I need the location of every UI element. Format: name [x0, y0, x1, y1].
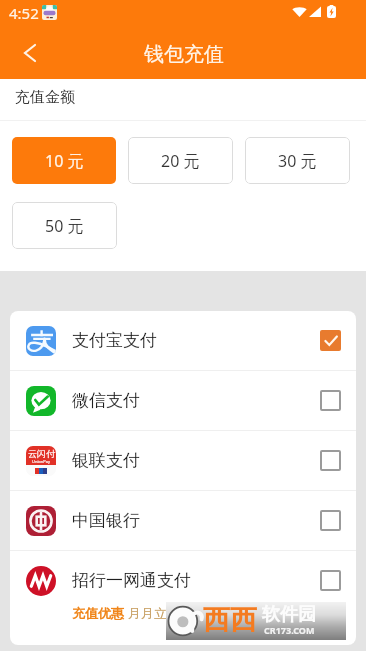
button[interactable]: 云闪付: [10, 431, 356, 490]
staticText: 20 元: [161, 150, 200, 172]
staticText: UnionPay: [32, 459, 51, 464]
staticText: CR173.COM: [264, 624, 315, 636]
button[interactable]: 50 元: [12, 202, 117, 249]
button[interactable]: 30 元: [245, 137, 350, 184]
staticText: 云闪付: [28, 448, 55, 459]
staticText: 微信支付: [72, 390, 320, 411]
button[interactable]: 微信支付: [10, 371, 356, 430]
staticText: 中国银行: [72, 510, 320, 531]
staticText: 支付宝支付: [72, 330, 320, 351]
staticText: 月月立减 3元: [128, 604, 204, 622]
button[interactable]: 10 元: [12, 137, 116, 184]
button[interactable]: 20 元: [128, 137, 233, 184]
staticText: 50 元: [45, 215, 84, 237]
staticText: 招行一网通支付: [72, 570, 320, 591]
staticText: 钱包充值: [144, 42, 224, 67]
staticText: 软件园: [262, 603, 316, 626]
staticText: 西西: [203, 603, 257, 637]
button[interactable]: 招行一网通支付: [10, 551, 356, 645]
staticText: 充值优惠: [72, 605, 124, 621]
staticText: 充值金额: [15, 88, 75, 107]
button[interactable]: 中国银行: [10, 491, 356, 550]
button[interactable]: Back: [8, 31, 50, 73]
staticText: 银联支付: [72, 450, 320, 471]
staticText: 10 元: [45, 150, 84, 172]
staticText: 30 元: [278, 150, 317, 172]
button[interactable]: 支付宝支付: [10, 311, 356, 370]
staticText: 4:52: [9, 3, 39, 23]
